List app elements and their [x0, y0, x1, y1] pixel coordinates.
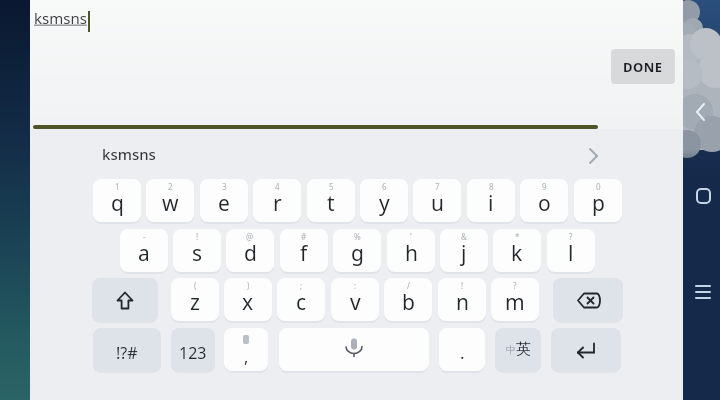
- staticText: #: [301, 231, 307, 242]
- button[interactable]: 9: [520, 179, 568, 222]
- button[interactable]: ;: [277, 278, 325, 321]
- staticText: u: [431, 189, 444, 218]
- staticText: w: [162, 189, 179, 218]
- staticText: :: [354, 280, 357, 291]
- staticText: d: [244, 239, 257, 268]
- button[interactable]: !?#: [93, 328, 161, 371]
- staticText: DONE: [623, 58, 663, 76]
- staticText: @: [246, 231, 254, 242]
- staticText: a: [138, 239, 150, 268]
- button[interactable]: 6: [360, 179, 408, 222]
- button[interactable]: %: [333, 229, 381, 272]
- staticText: q: [111, 189, 124, 218]
- button[interactable]: 5: [307, 179, 355, 222]
- button[interactable]: .: [439, 328, 485, 371]
- button[interactable]: 1: [93, 179, 141, 222]
- staticText: n: [456, 288, 469, 317]
- button[interactable]: ksmsns: [30, 129, 683, 178]
- staticText: j: [461, 239, 467, 268]
- staticText: p: [592, 189, 605, 218]
- button[interactable]: &: [440, 229, 488, 272]
- staticText: ;: [300, 280, 303, 291]
- staticText: 英: [516, 340, 531, 359]
- staticText: ): [247, 280, 250, 291]
- staticText: f: [300, 239, 308, 268]
- staticText: 123: [179, 342, 207, 364]
- button[interactable]: [551, 328, 621, 371]
- button[interactable]: ?: [547, 229, 595, 272]
- staticText: b: [402, 288, 415, 317]
- button[interactable]: 0: [574, 179, 622, 222]
- staticText: c: [296, 288, 307, 317]
- staticText: y: [379, 189, 390, 218]
- button[interactable]: 4: [253, 179, 301, 222]
- staticText: s: [192, 239, 203, 268]
- staticText: 3: [222, 181, 227, 192]
- button[interactable]: 7: [413, 179, 461, 222]
- staticText: /: [407, 280, 410, 291]
- staticText: 0: [596, 181, 601, 192]
- staticText: o: [538, 189, 551, 218]
- staticText: e: [218, 189, 230, 218]
- button[interactable]: (: [171, 278, 219, 321]
- staticText: .: [460, 341, 465, 364]
- button[interactable]: !: [438, 278, 486, 321]
- staticText: !?#: [116, 342, 138, 364]
- staticText: 中: [506, 343, 516, 356]
- button[interactable]: !: [173, 229, 221, 272]
- staticText: ?: [569, 231, 573, 242]
- button[interactable]: [224, 328, 268, 371]
- button[interactable]: [553, 278, 623, 321]
- button[interactable]: *: [493, 229, 541, 272]
- staticText: ksmsns: [34, 8, 87, 28]
- staticText: i: [488, 189, 494, 218]
- button[interactable]: 2: [146, 179, 194, 222]
- staticText: 9: [542, 181, 547, 192]
- button[interactable]: [92, 278, 158, 321]
- staticText: !: [196, 231, 199, 242]
- staticText: h: [405, 239, 418, 268]
- button[interactable]: DONE: [611, 49, 675, 84]
- staticText: !: [461, 280, 464, 291]
- staticText: v: [350, 288, 361, 317]
- staticText: ': [410, 231, 412, 242]
- staticText: ,: [244, 346, 249, 368]
- button[interactable]: @: [226, 229, 274, 272]
- button[interactable]: #: [280, 229, 328, 272]
- button[interactable]: 3: [200, 179, 248, 222]
- staticText: -: [143, 231, 146, 242]
- staticText: 6: [382, 181, 387, 192]
- staticText: 2: [168, 181, 173, 192]
- staticText: z: [190, 288, 200, 317]
- button[interactable]: ': [387, 229, 435, 272]
- button[interactable]: ): [224, 278, 272, 321]
- staticText: r: [273, 189, 282, 218]
- staticText: ksmsns: [102, 144, 156, 164]
- staticText: x: [242, 288, 254, 317]
- button[interactable]: 中: [495, 328, 541, 371]
- staticText: *: [515, 231, 520, 242]
- staticText: m: [505, 288, 525, 317]
- staticText: (: [194, 280, 197, 291]
- button[interactable]: :: [331, 278, 379, 321]
- staticText: k: [511, 239, 523, 268]
- button[interactable]: /: [384, 278, 432, 321]
- button[interactable]: -: [120, 229, 168, 272]
- staticText: l: [568, 239, 574, 268]
- staticText: 5: [329, 181, 334, 192]
- staticText: ?: [513, 280, 517, 291]
- button[interactable]: 8: [467, 179, 515, 222]
- staticText: 8: [489, 181, 494, 192]
- staticText: 4: [275, 181, 280, 192]
- staticText: %: [354, 231, 361, 242]
- staticText: 1: [115, 181, 120, 192]
- staticText: g: [351, 239, 364, 268]
- button[interactable]: 123: [171, 328, 215, 371]
- staticText: t: [327, 189, 335, 218]
- button[interactable]: [279, 328, 429, 371]
- staticText: &: [461, 231, 467, 242]
- staticText: 7: [435, 181, 440, 192]
- button[interactable]: ?: [491, 278, 539, 321]
